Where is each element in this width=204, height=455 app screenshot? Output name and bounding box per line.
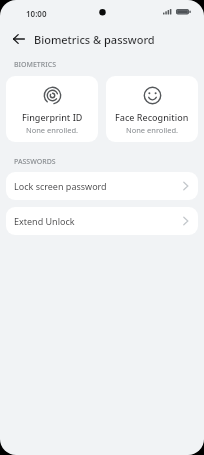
staticText: Face Recognition xyxy=(115,111,189,123)
staticText: BIOMETRICS xyxy=(14,60,56,70)
button[interactable]: Extend Unlock xyxy=(6,207,198,235)
button[interactable]: Fingerprint ID xyxy=(6,76,98,142)
staticText: Extend Unlock xyxy=(14,215,75,227)
staticText: Lock screen password xyxy=(14,180,107,192)
staticText: None enrolled. xyxy=(26,125,79,135)
staticText: None enrolled. xyxy=(126,125,179,135)
staticText: PASSWORDS xyxy=(14,157,56,167)
staticText: 10:00 xyxy=(26,8,47,19)
button[interactable]: Lock screen password xyxy=(6,172,198,200)
staticText: Biometrics & password xyxy=(34,32,155,47)
staticText: Fingerprint ID xyxy=(22,111,83,123)
button[interactable]: Biometrics & password xyxy=(0,26,204,52)
button[interactable]: Face Recognition xyxy=(106,76,198,142)
button[interactable] xyxy=(13,34,25,44)
